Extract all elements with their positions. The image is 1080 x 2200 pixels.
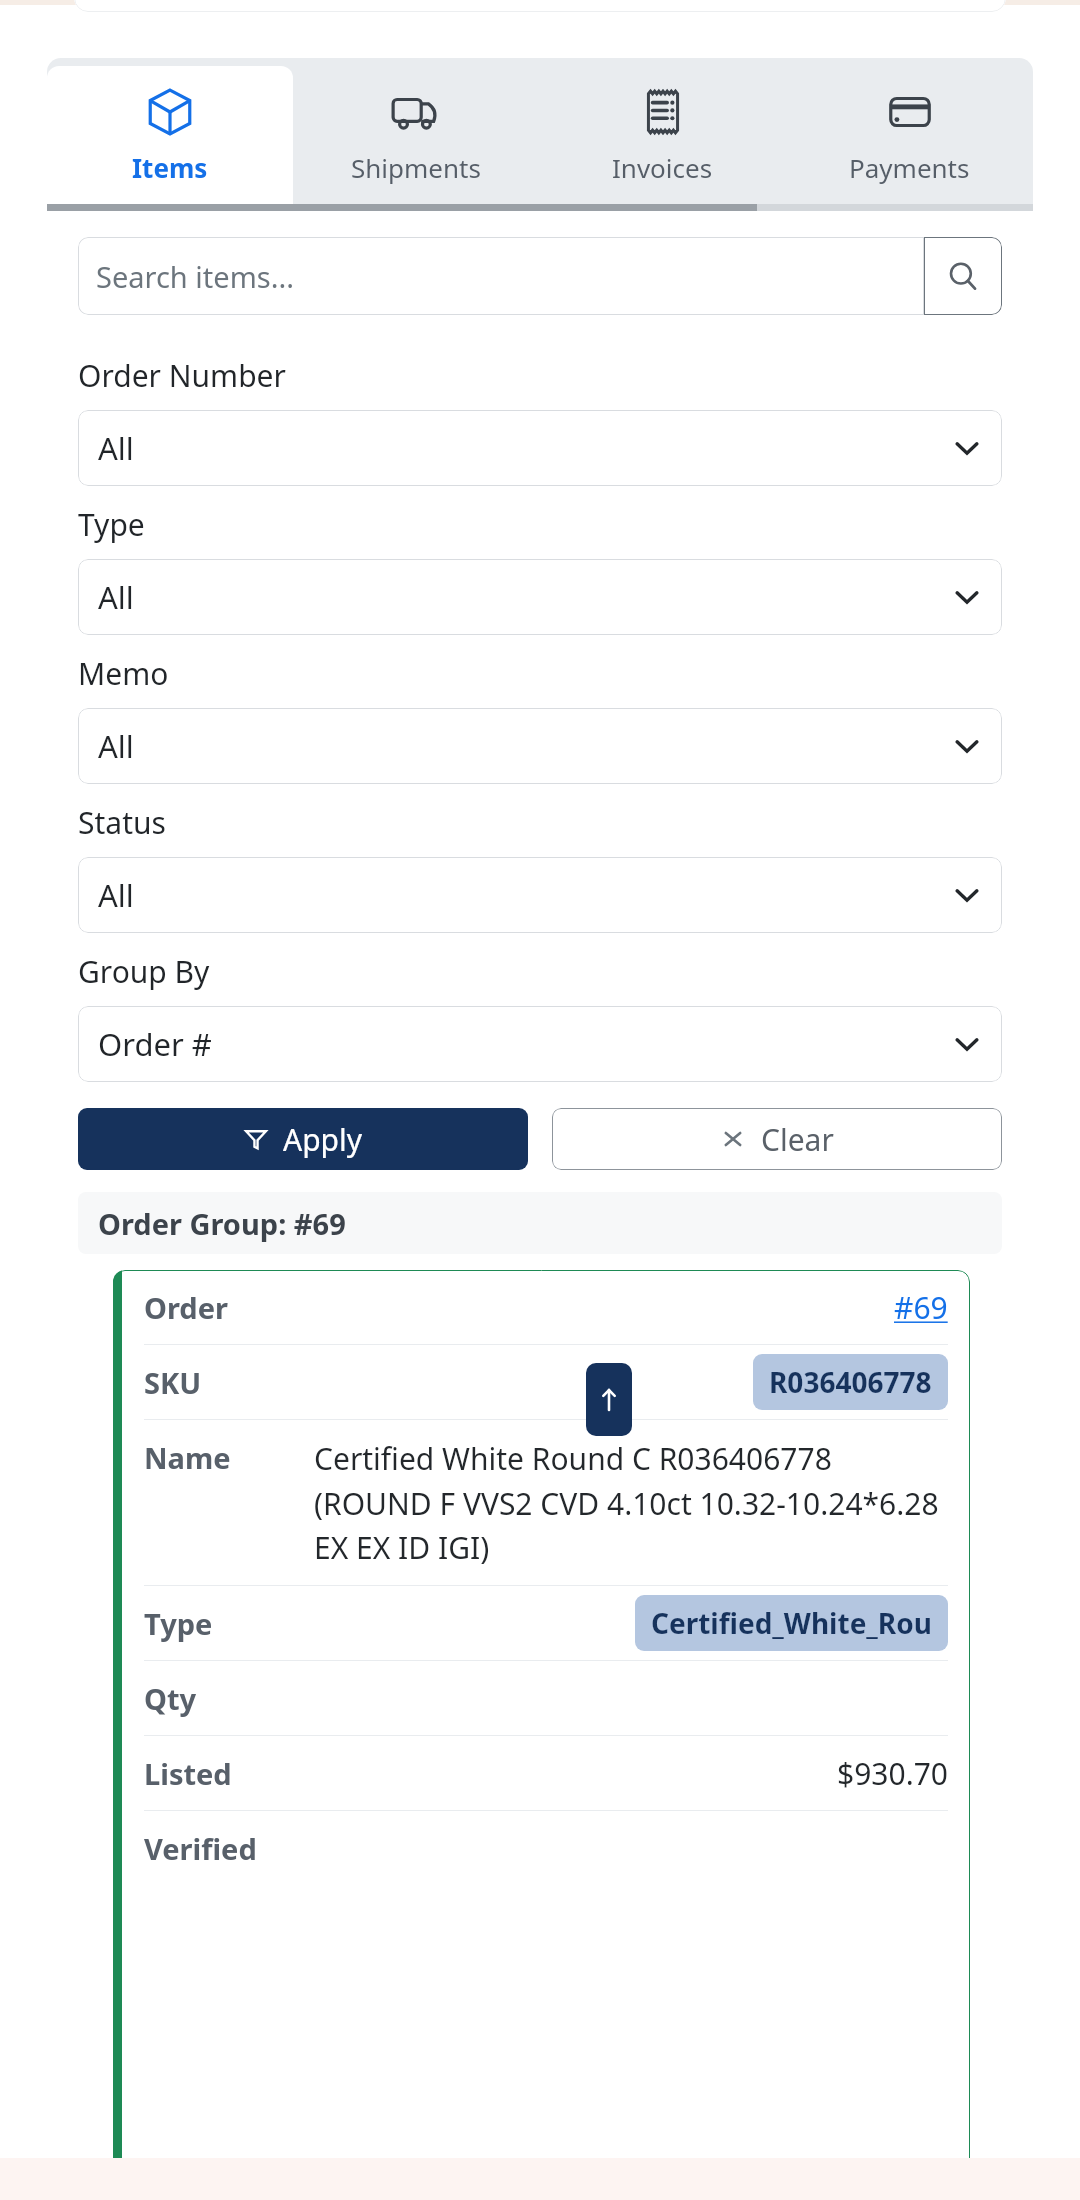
staticText: Apply [283, 1119, 363, 1160]
staticText: Name [144, 1438, 314, 1477]
staticText: SKU [144, 1363, 202, 1402]
staticText: Memo [78, 653, 169, 694]
staticText: Type [78, 504, 145, 545]
staticText: Invoices [612, 150, 713, 185]
staticText: Verified [144, 1829, 257, 1868]
staticText: All [98, 725, 134, 767]
staticText: Qty [144, 1679, 197, 1718]
button[interactable]: Payments [786, 66, 1033, 204]
staticText: Payments [849, 150, 970, 185]
staticText: All [98, 427, 134, 469]
staticText: Items [132, 150, 208, 185]
button[interactable]: Clear [552, 1108, 1002, 1170]
staticText: Certified_White_Rou [651, 1604, 932, 1642]
button[interactable]: Shipments [293, 66, 539, 204]
button[interactable]: All [78, 410, 1002, 486]
button[interactable]: Items [47, 66, 293, 204]
button[interactable]: All [78, 857, 1002, 933]
staticText: Type [144, 1604, 213, 1643]
staticText: Clear [761, 1119, 834, 1160]
staticText: Order Group: #69 [98, 1204, 346, 1243]
staticText: Listed [144, 1754, 232, 1793]
staticText: Shipments [351, 150, 481, 185]
button[interactable]: Scroll to top [586, 1363, 632, 1436]
staticText: Order [144, 1288, 228, 1327]
button[interactable]: Order # [78, 1006, 1002, 1082]
staticText: $930.70 [837, 1753, 948, 1794]
staticText: #69 [894, 1287, 948, 1328]
staticText: R036406778 [769, 1363, 932, 1401]
button[interactable]: Search items... [78, 237, 924, 315]
button[interactable]: Order Group: #69 [78, 1192, 1002, 1254]
staticText: Search items... [96, 257, 294, 296]
button[interactable]: All [78, 559, 1002, 635]
button[interactable]: Apply [78, 1108, 528, 1170]
button[interactable]: Invoices [539, 66, 786, 204]
staticText: Order Number [78, 355, 286, 396]
staticText: Status [78, 802, 166, 843]
staticText: All [98, 576, 134, 618]
button[interactable]: All [78, 708, 1002, 784]
staticText: Certified White Round C R036406778 (ROUN… [314, 1438, 948, 1567]
button[interactable]: Search [924, 237, 1002, 315]
staticText: All [98, 874, 134, 916]
staticText: Group By [78, 951, 210, 992]
staticText: Order # [98, 1023, 212, 1065]
